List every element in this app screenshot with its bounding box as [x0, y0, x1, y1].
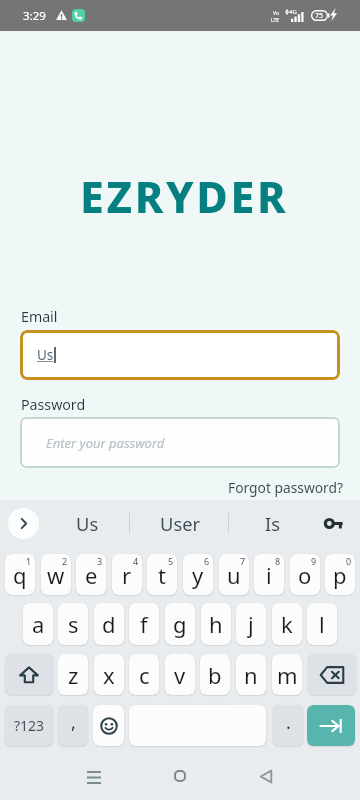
button[interactable]: k	[272, 603, 302, 645]
staticText: Us	[76, 511, 99, 536]
button[interactable]: m	[272, 654, 302, 695]
staticText: f	[140, 609, 148, 639]
button[interactable]: User	[140, 505, 220, 541]
staticText: Vo	[273, 10, 279, 17]
button[interactable]: Us	[20, 330, 340, 380]
button[interactable]: c	[129, 654, 159, 695]
staticText: Email	[21, 307, 58, 326]
button[interactable]: Us	[47, 505, 127, 541]
staticText: t	[158, 560, 166, 590]
button[interactable]: EZRYDER	[80, 167, 289, 226]
staticText: 1	[26, 555, 32, 567]
staticText: User	[160, 511, 201, 536]
staticText: 2	[62, 555, 68, 567]
button[interactable]: z	[58, 654, 88, 695]
button[interactable]: ?123	[5, 705, 53, 746]
button[interactable]: h	[201, 603, 231, 645]
staticText: Forgot password?	[228, 478, 343, 497]
button[interactable]: ,	[58, 705, 88, 746]
staticText: Us	[37, 346, 54, 364]
staticText: h	[209, 609, 223, 639]
staticText: j	[248, 609, 254, 639]
button[interactable]: r	[112, 554, 142, 595]
button[interactable]: v	[165, 654, 195, 695]
button[interactable]: Forgot password?	[228, 477, 360, 498]
button[interactable]: d	[94, 603, 124, 645]
staticText: g	[173, 609, 187, 639]
staticText: i	[266, 560, 272, 590]
staticText: LTE	[271, 17, 280, 24]
button[interactable]: Show toolbar	[8, 508, 39, 539]
staticText: x	[103, 660, 115, 690]
staticText: m	[277, 660, 298, 690]
button[interactable]: s	[58, 603, 88, 645]
button[interactable]: Enter your password	[20, 417, 340, 468]
button[interactable]: t	[147, 554, 177, 595]
staticText: e	[85, 560, 98, 590]
button[interactable]	[93, 705, 124, 746]
staticText: c	[139, 660, 150, 690]
button[interactable]: b	[200, 654, 230, 695]
staticText: 3:29	[23, 8, 46, 24]
button[interactable]: Home	[160, 752, 200, 800]
staticText: Password	[21, 395, 86, 414]
staticText: 3	[97, 555, 103, 567]
button[interactable]	[5, 654, 53, 695]
staticText: n	[244, 660, 258, 690]
staticText: 75	[315, 11, 324, 21]
button[interactable]: e	[76, 554, 106, 595]
staticText: 6	[204, 555, 210, 567]
staticText: p	[333, 560, 347, 590]
staticText: v	[174, 660, 186, 690]
button[interactable]: f	[129, 603, 159, 645]
button[interactable]: g	[165, 603, 195, 645]
staticText: ?123	[14, 716, 45, 735]
staticText: r	[122, 560, 132, 590]
staticText: q	[13, 560, 27, 590]
staticText: k	[281, 609, 293, 639]
staticText: 4	[133, 555, 139, 567]
staticText: a	[32, 609, 45, 639]
button[interactable]: u	[219, 554, 249, 595]
staticText: 8	[275, 555, 281, 567]
button[interactable]: y	[183, 554, 213, 595]
staticText: ,	[71, 710, 76, 735]
staticText: b	[208, 660, 222, 690]
button[interactable]: Passwords	[320, 510, 347, 537]
staticText: 4G	[289, 8, 297, 16]
staticText: o	[298, 560, 312, 590]
staticText: u	[227, 560, 241, 590]
staticText: d	[102, 609, 116, 639]
button[interactable]: a	[23, 603, 53, 645]
button[interactable]: Back	[246, 752, 286, 800]
staticText: Enter your password	[46, 434, 165, 452]
button[interactable]: q	[5, 554, 35, 595]
button[interactable]: j	[236, 603, 266, 645]
staticText: w	[47, 560, 65, 590]
staticText: 9	[311, 555, 317, 567]
staticText: z	[68, 660, 79, 690]
button[interactable]: x	[94, 654, 124, 695]
staticText: 7	[240, 555, 246, 567]
button[interactable]: o	[290, 554, 320, 595]
staticText: 0	[346, 555, 352, 567]
button[interactable]: i	[254, 554, 284, 595]
staticText: .	[286, 710, 291, 735]
button[interactable]: n	[236, 654, 266, 695]
staticText: y	[192, 560, 204, 590]
button[interactable]: .	[273, 705, 303, 746]
button[interactable]: Is	[232, 505, 312, 541]
button[interactable]: Recent apps	[74, 752, 114, 800]
button[interactable]: Enter	[307, 705, 355, 746]
button[interactable]: p	[325, 554, 355, 595]
staticText: 5	[168, 555, 174, 567]
button[interactable]	[308, 654, 356, 695]
staticText: Is	[265, 511, 280, 536]
staticText: s	[68, 609, 79, 639]
staticText: l	[319, 609, 325, 639]
button[interactable]: l	[307, 603, 337, 645]
button[interactable]: w	[41, 554, 71, 595]
